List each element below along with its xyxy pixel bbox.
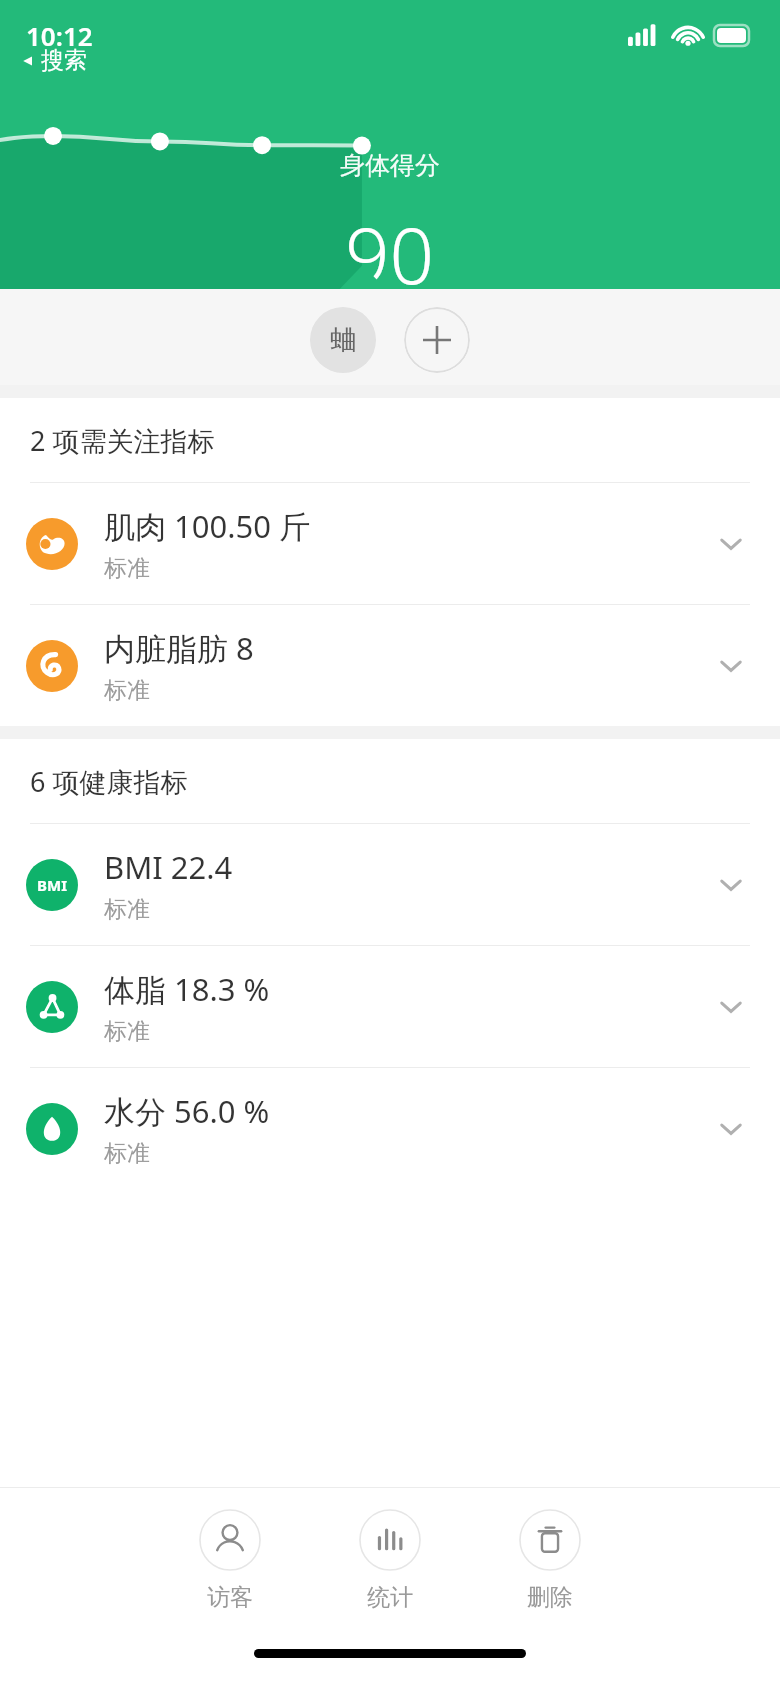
- staticText: 身体得分: [340, 150, 440, 181]
- button[interactable]: 展开: [708, 862, 754, 908]
- button[interactable]: 统计: [353, 1505, 427, 1616]
- button[interactable]: 内脏脂肪 8: [0, 605, 780, 726]
- button[interactable]: 体脂 18.3 %: [0, 946, 780, 1067]
- button[interactable]: 水分 56.0 %: [0, 1068, 780, 1189]
- staticText: 蛐: [330, 324, 356, 357]
- button[interactable]: 添加: [404, 307, 470, 373]
- staticText: 10:12: [26, 18, 93, 53]
- button[interactable]: 肌肉 100.50 斤: [0, 483, 780, 604]
- staticText: 统计: [367, 1583, 413, 1612]
- button[interactable]: 展开: [708, 643, 754, 689]
- button[interactable]: 展开: [708, 984, 754, 1030]
- staticText: 6 项健康指标: [30, 763, 188, 800]
- staticText: 肌肉 100.50 斤: [104, 505, 311, 547]
- button[interactable]: 展开: [708, 521, 754, 567]
- staticText: 内脏脂肪 8: [104, 627, 254, 669]
- button[interactable]: BMI: [0, 824, 780, 945]
- button[interactable]: 删除: [513, 1505, 587, 1616]
- button[interactable]: 访客: [193, 1505, 267, 1616]
- staticText: 标准: [104, 1139, 150, 1168]
- staticText: 90: [345, 201, 435, 289]
- staticText: 搜索: [41, 46, 87, 75]
- staticText: 2 项需关注指标: [30, 422, 215, 459]
- staticText: 删除: [527, 1583, 573, 1612]
- staticText: 体脂 18.3 %: [104, 968, 270, 1010]
- staticText: 水分 56.0 %: [104, 1090, 270, 1132]
- staticText: 标准: [104, 1017, 150, 1046]
- staticText: 标准: [104, 895, 150, 924]
- button[interactable]: 蛐: [310, 307, 376, 373]
- staticText: BMI: [37, 875, 67, 895]
- button[interactable]: 展开: [708, 1106, 754, 1152]
- staticText: 访客: [207, 1583, 253, 1612]
- staticText: BMI 22.4: [104, 846, 233, 888]
- staticText: 标准: [104, 554, 150, 583]
- staticText: 标准: [104, 676, 150, 705]
